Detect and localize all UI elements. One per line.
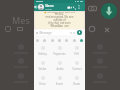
button[interactable]: Voice call	[72, 5, 77, 10]
button[interactable]: Poll	[68, 44, 85, 59]
button[interactable]	[80, 39, 83, 42]
button[interactable]	[58, 39, 61, 42]
staticText: Name	[45, 4, 54, 8]
staticText: Event	[56, 82, 63, 86]
staticText: Poll	[74, 52, 79, 56]
button[interactable]: Contact	[68, 59, 85, 74]
button[interactable]: Gallery	[34, 44, 51, 59]
staticText: 🔒 Messages are both the end-to- end encr…	[42, 12, 77, 27]
button[interactable]	[43, 39, 46, 42]
button[interactable]: Message	[35, 30, 76, 35]
staticText: Contact	[72, 67, 82, 71]
button[interactable]: Drive	[34, 74, 51, 89]
button[interactable]: Draw	[68, 74, 85, 89]
button[interactable]: New chat	[101, 3, 117, 19]
staticText: Payments	[53, 52, 66, 56]
button[interactable]: Audio	[51, 59, 68, 74]
button[interactable]: Sticker	[34, 59, 51, 74]
button[interactable]: Event	[51, 74, 68, 89]
button[interactable]: Video call	[67, 5, 72, 10]
button[interactable]: Voice message	[77, 30, 82, 35]
button[interactable]: Camera	[88, 4, 97, 13]
staticText: Drive	[39, 82, 46, 86]
button[interactable]: More options	[77, 3, 81, 11]
staticText: Sticker	[38, 67, 47, 71]
button[interactable]: 🔒 Messages are both the end-to- end encr…	[42, 12, 77, 29]
button[interactable]	[36, 39, 39, 42]
staticText: Draw	[73, 82, 80, 86]
button[interactable]: Payments	[51, 44, 68, 59]
button[interactable]: Back	[34, 3, 85, 11]
button[interactable]	[51, 39, 54, 42]
button[interactable]: Back	[34, 3, 38, 11]
button[interactable]	[73, 39, 76, 42]
staticText: Gallery	[38, 52, 47, 56]
staticText: Audio	[56, 67, 64, 71]
button[interactable]	[65, 39, 68, 42]
staticText: Message	[39, 31, 52, 35]
staticText: online	[45, 8, 52, 11]
staticText: Mes	[12, 14, 30, 26]
